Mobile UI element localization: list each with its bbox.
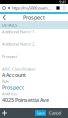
- staticText: Additional Name 2: [2, 41, 34, 47]
- staticText: Additional Name 1: [2, 29, 34, 34]
- staticText: DETAILS: [2, 22, 17, 28]
- staticText: Prospect: [23, 14, 45, 21]
- staticText: https://my5000.example: [12, 5, 52, 11]
- staticText: Role: [2, 79, 9, 84]
- staticText: Prospect: [2, 84, 24, 91]
- staticText: Address: [2, 91, 17, 96]
- staticText: ABC Classification: [2, 66, 35, 71]
- button[interactable]: Back: [2, 14, 7, 20]
- staticText: Prospect: [2, 54, 17, 59]
- staticText: 4025 Poinsettia Ave: [2, 96, 49, 103]
- staticText: A Account: [2, 71, 26, 79]
- staticText: Save: [36, 110, 44, 116]
- button[interactable]: Save: [35, 110, 46, 116]
- staticText: Cancel: [49, 110, 61, 116]
- button[interactable]: Add: [0, 108, 9, 117]
- button[interactable]: Reload: [56, 6, 60, 10]
- button[interactable]: Tabs: [2, 6, 6, 10]
- button[interactable]: Cancel: [48, 110, 62, 116]
- button[interactable]: Menu: [62, 5, 66, 11]
- staticText: 9:41: [59, 0, 66, 5]
